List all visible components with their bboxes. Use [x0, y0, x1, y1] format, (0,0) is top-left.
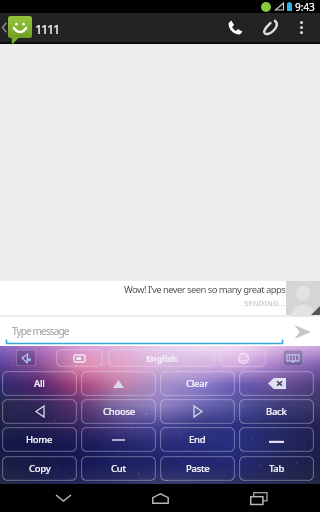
staticText: Paste [186, 462, 210, 475]
button[interactable]: Keyboard [283, 350, 303, 366]
button[interactable]: More options [289, 13, 313, 42]
button[interactable]: Send [284, 317, 320, 346]
button[interactable]: Emoji [220, 349, 266, 367]
button[interactable]: space [239, 427, 314, 452]
button[interactable]: Attach [256, 13, 287, 42]
button[interactable]: End [160, 427, 235, 452]
staticText: SENDING... [244, 298, 286, 308]
button[interactable]: Back [239, 399, 314, 424]
button[interactable]: Recent apps [223, 484, 293, 512]
button[interactable]: up [81, 371, 156, 396]
button[interactable]: Voice [56, 349, 103, 367]
button[interactable]: All [2, 371, 77, 396]
button[interactable]: Hide keyboard [28, 484, 98, 512]
staticText: Tab [269, 462, 285, 475]
button[interactable]: del [239, 371, 314, 396]
staticText: Clear [186, 377, 209, 390]
button[interactable]: right [160, 399, 235, 424]
button[interactable]: Home [2, 427, 77, 452]
staticText: 9:43 [295, 0, 315, 13]
button[interactable]: English [108, 349, 215, 367]
staticText: 1111 [35, 20, 60, 38]
button[interactable]: Clear [160, 371, 235, 396]
button[interactable]: minus [81, 427, 156, 452]
staticText: Cut [111, 462, 126, 475]
staticText: English [146, 352, 177, 364]
staticText: End [189, 433, 206, 446]
button[interactable]: Settings [16, 350, 36, 366]
button[interactable]: left [2, 399, 77, 424]
button[interactable]: Navigate up [0, 13, 33, 42]
staticText: Home [26, 433, 53, 446]
button[interactable]: Home [125, 484, 195, 512]
button[interactable]: Paste [160, 456, 235, 481]
staticText: All [34, 377, 45, 390]
staticText: Type message [12, 324, 69, 338]
staticText: Back [266, 405, 287, 418]
button[interactable]: Tab [239, 456, 314, 481]
button[interactable]: Choose [81, 399, 156, 424]
staticText: Choose [103, 405, 135, 418]
button[interactable]: Cut [81, 456, 156, 481]
button[interactable]: Call [220, 13, 251, 42]
button[interactable]: Copy [2, 456, 77, 481]
staticText: Copy [29, 462, 51, 475]
staticText: Wow! I've never seen so many great apps [124, 283, 286, 296]
